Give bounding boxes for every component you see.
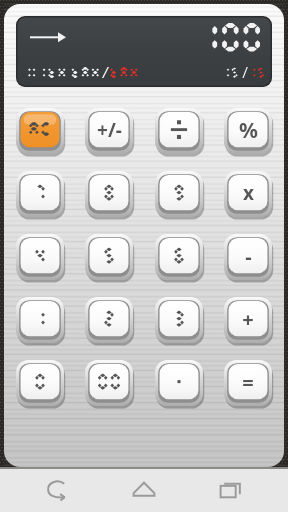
button[interactable] <box>152 231 206 283</box>
button[interactable] <box>82 294 136 346</box>
button[interactable] <box>13 105 67 157</box>
button[interactable] <box>82 357 136 409</box>
button[interactable] <box>152 357 206 409</box>
button[interactable] <box>13 294 67 346</box>
button[interactable] <box>13 357 67 409</box>
button[interactable] <box>152 294 206 346</box>
other: Decimal point <box>152 357 206 409</box>
other: 3 <box>152 294 206 346</box>
other: Minus <box>221 231 275 283</box>
other: 6 <box>152 231 206 283</box>
staticText: % <box>239 116 258 145</box>
staticText: + <box>242 306 254 333</box>
button[interactable]: - <box>221 231 275 283</box>
other: 7 <box>13 168 67 220</box>
button[interactable] <box>82 231 136 283</box>
other: Divide <box>152 105 206 157</box>
staticText: +/- <box>97 117 122 143</box>
other: 9 <box>152 168 206 220</box>
other: 1 <box>13 294 67 346</box>
button[interactable]: Recent apps <box>201 467 261 512</box>
button[interactable]: % <box>221 105 275 157</box>
other: Percent <box>221 105 275 157</box>
other: Equals <box>221 357 275 409</box>
other: AC <box>13 105 67 157</box>
button[interactable]: Home <box>114 467 174 512</box>
button[interactable] <box>13 168 67 220</box>
button[interactable]: x <box>221 168 275 220</box>
other: Multiply <box>221 168 275 220</box>
staticText: = <box>242 369 254 396</box>
button[interactable]: = <box>221 357 275 409</box>
other: Double zero <box>82 357 136 409</box>
button[interactable] <box>82 168 136 220</box>
button[interactable] <box>152 168 206 220</box>
other: 0 <box>13 357 67 409</box>
other: Plus minus <box>82 105 136 157</box>
button[interactable]: Back <box>27 467 87 512</box>
other: 4 <box>13 231 67 283</box>
other: 8 <box>82 168 136 220</box>
button[interactable] <box>152 105 206 157</box>
button[interactable]: +/- <box>82 105 136 157</box>
button[interactable] <box>13 231 67 283</box>
button[interactable]: + <box>221 294 275 346</box>
other: 5 <box>82 231 136 283</box>
staticText: - <box>245 243 252 270</box>
other: 2 <box>82 294 136 346</box>
other: Plus <box>221 294 275 346</box>
staticText: x <box>243 180 254 206</box>
